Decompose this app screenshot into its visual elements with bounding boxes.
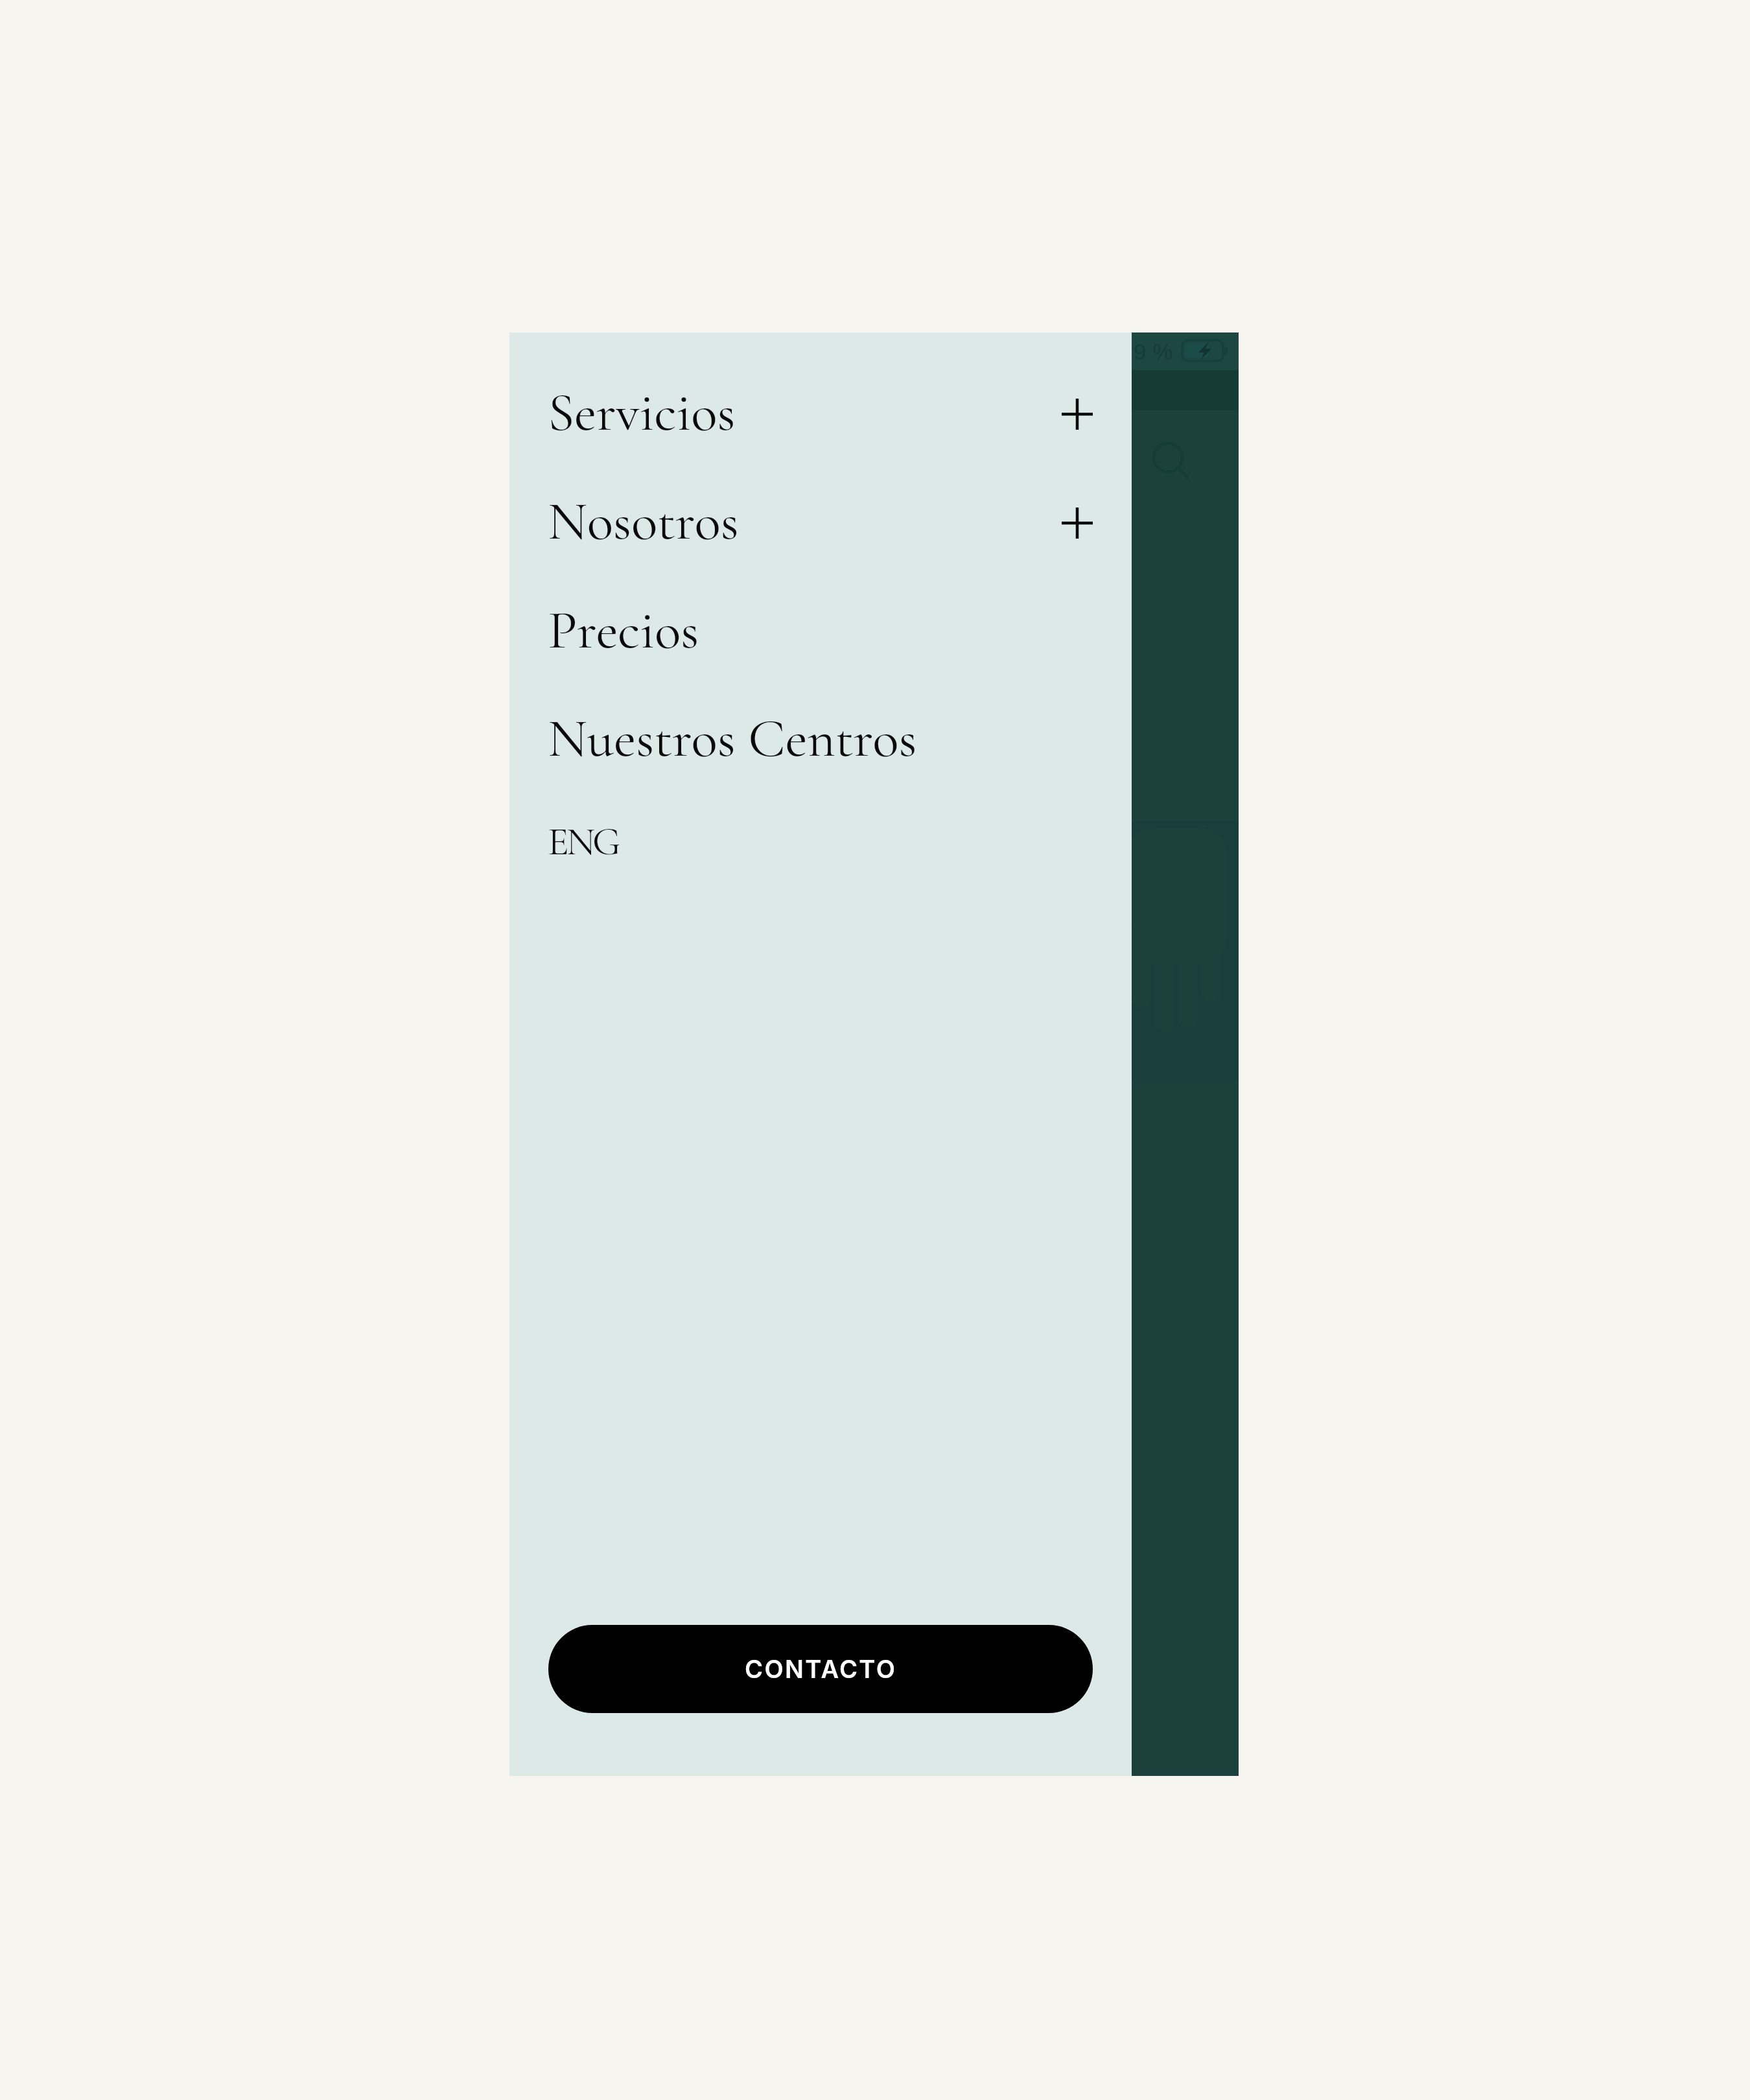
button[interactable]: Nosotros: [509, 488, 1132, 579]
staticText: 9 %: [1134, 339, 1173, 364]
staticText: Precios: [548, 597, 699, 663]
button[interactable]: Nuestros Centros: [509, 705, 1132, 796]
button[interactable]: Expand Nosotros: [1062, 507, 1093, 539]
staticText: CONTACTO: [745, 1654, 897, 1684]
button[interactable]: ENG: [509, 818, 1132, 909]
staticText: Servicios: [548, 379, 736, 445]
button[interactable]: Servicios: [509, 379, 1132, 470]
staticText: Nosotros: [548, 488, 739, 554]
staticText: ENG: [548, 818, 618, 866]
button[interactable]: Precios: [509, 597, 1132, 688]
button[interactable]: Expand Servicios: [1062, 399, 1093, 430]
staticText: Nuestros Centros: [548, 705, 917, 771]
button[interactable]: CONTACTO: [548, 1625, 1093, 1713]
